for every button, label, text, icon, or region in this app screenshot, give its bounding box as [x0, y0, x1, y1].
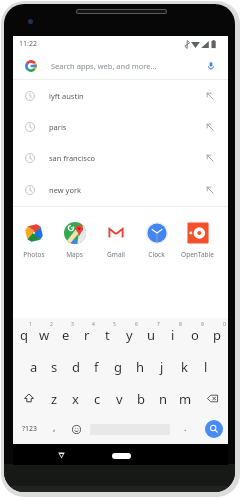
button[interactable]: ?123 [13, 414, 46, 444]
staticText: l [204, 358, 208, 376]
staticText: p [213, 326, 221, 344]
button[interactable]: k [173, 350, 195, 382]
button[interactable]: b [130, 382, 152, 414]
button[interactable]: 0 [206, 318, 228, 350]
staticText: g [114, 358, 122, 376]
button[interactable]: Search [200, 414, 228, 444]
staticText: ?123 [22, 424, 38, 434]
button[interactable]: n [152, 382, 174, 414]
staticText: 1 [29, 321, 32, 328]
staticText: j [160, 358, 164, 376]
staticText: h [136, 358, 145, 376]
staticText: i [171, 326, 175, 344]
button[interactable]: 3 [55, 318, 76, 350]
staticText: m [179, 390, 192, 408]
staticText: x [72, 390, 79, 408]
button[interactable]: 7 [140, 318, 162, 350]
button[interactable]: d [65, 350, 86, 382]
button[interactable]: m [174, 382, 196, 414]
button[interactable]: new york [13, 174, 228, 206]
staticText: y [126, 326, 133, 344]
button[interactable]: c [86, 382, 108, 414]
staticText: san francisco [49, 153, 96, 163]
staticText: a [30, 358, 38, 376]
staticText: s [51, 358, 58, 376]
staticText: . [184, 421, 187, 433]
staticText: Maps [66, 250, 83, 259]
button[interactable]: , [46, 414, 62, 444]
staticText: q [20, 326, 28, 344]
button[interactable]: lyft austin [13, 80, 228, 111]
button[interactable]: 9 [184, 318, 206, 350]
button[interactable]: 4 [76, 318, 97, 350]
staticText: e [62, 326, 70, 344]
button[interactable]: Backspace [196, 382, 228, 414]
staticText: OpenTable [181, 250, 214, 259]
button[interactable]: Search apps, web, and more... [13, 52, 228, 79]
staticText: b [137, 390, 145, 408]
other: Insert suggestion [206, 92, 214, 100]
staticText: 8 [179, 321, 182, 328]
button[interactable]: 5 [97, 318, 118, 350]
button[interactable]: z [44, 382, 65, 414]
other: Insert suggestion [206, 154, 214, 162]
staticText: z [51, 390, 58, 408]
staticText: paris [49, 122, 67, 132]
button[interactable]: 2 [34, 318, 55, 350]
button[interactable]: Photos [13, 207, 54, 259]
staticText: 7 [157, 321, 160, 328]
staticText: 6 [135, 321, 138, 328]
staticText: w [39, 326, 50, 344]
staticText: Search apps, web, and more... [51, 61, 157, 71]
button[interactable]: g [107, 350, 129, 382]
button[interactable]: Maps [54, 207, 95, 259]
button[interactable]: l [195, 350, 217, 382]
button[interactable]: OpenTable [177, 207, 218, 259]
button[interactable]: h [129, 350, 151, 382]
other: Insert suggestion [206, 123, 214, 131]
staticText: lyft austin [49, 91, 84, 101]
staticText: v [116, 390, 123, 408]
staticText: Photos [23, 250, 45, 259]
staticText: 0 [223, 321, 226, 328]
button[interactable]: paris [13, 111, 228, 142]
button[interactable] [90, 414, 170, 444]
staticText: 3 [71, 321, 74, 328]
staticText: Clock [148, 250, 165, 259]
button[interactable]: 6 [118, 318, 140, 350]
button[interactable]: Shift [13, 382, 44, 414]
button[interactable]: j [151, 350, 173, 382]
button[interactable]: a [23, 350, 44, 382]
staticText: d [72, 358, 80, 376]
button[interactable]: x [65, 382, 86, 414]
button[interactable]: v [108, 382, 130, 414]
button[interactable]: 1 [13, 318, 34, 350]
button[interactable]: f [86, 350, 107, 382]
button[interactable]: Back [58, 452, 65, 459]
button[interactable]: san francisco [13, 142, 228, 174]
staticText: 2 [50, 321, 53, 328]
staticText: n [159, 390, 168, 408]
staticText: r [84, 326, 90, 344]
button[interactable]: s [44, 350, 65, 382]
button[interactable]: Emoji [62, 414, 90, 444]
staticText: 4 [92, 321, 95, 328]
staticText: u [147, 326, 156, 344]
staticText: f [94, 358, 99, 376]
staticText: 11:22 [19, 39, 37, 49]
staticText: o [191, 326, 199, 344]
staticText: c [94, 390, 101, 408]
staticText: Gmail [107, 250, 125, 259]
button[interactable]: Clock [136, 207, 177, 259]
button[interactable]: . [170, 414, 200, 444]
staticText: , [53, 421, 56, 433]
staticText: 5 [113, 321, 116, 328]
staticText: k [181, 358, 188, 376]
staticText: t [105, 326, 110, 344]
other: Insert suggestion [206, 186, 214, 194]
button[interactable]: Gmail [95, 207, 136, 259]
button[interactable]: 8 [162, 318, 184, 350]
staticText: new york [49, 185, 82, 195]
staticText: 9 [201, 321, 204, 328]
button[interactable]: Home [112, 453, 131, 459]
